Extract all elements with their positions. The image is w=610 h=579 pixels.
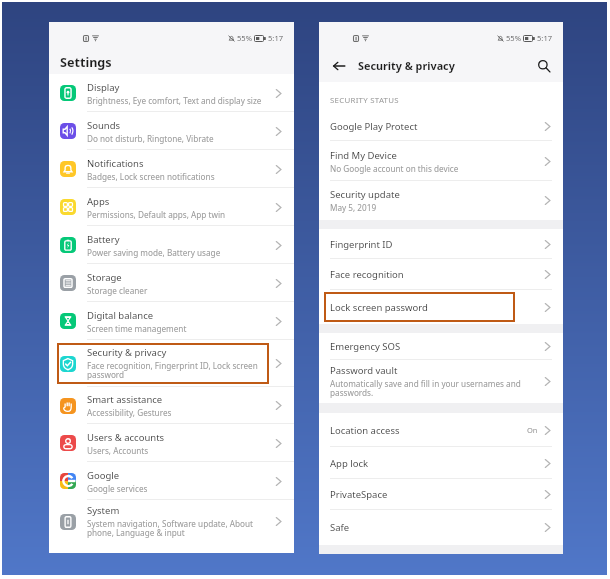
staticText: Apps [87,195,110,208]
button[interactable]: Display [49,74,294,112]
staticText: App lock [330,457,369,470]
staticText: Power saving mode, Battery usage [87,247,221,258]
button[interactable]: System [49,500,294,543]
button[interactable]: App lock [319,447,563,479]
button[interactable]: Safe [319,510,563,545]
staticText: PrivateSpace [330,488,388,501]
staticText: Security & privacy [358,58,455,73]
staticText: Display [87,81,120,94]
staticText: Storage cleaner [87,285,148,296]
staticText: Google services [87,483,148,494]
staticText: SECURITY STATUS [330,95,399,106]
staticText: System navigation, Software update, Abou… [87,518,253,539]
button[interactable]: Fingerprint ID [319,229,563,259]
staticText: Fingerprint ID [330,238,393,251]
staticText: Google Play Protect [330,120,418,133]
button[interactable]: Face recognition [319,259,563,290]
staticText: Safe [330,521,350,534]
staticText: Security update [330,188,400,201]
staticText: Face recognition, Fingerprint ID, Lock s… [87,360,258,381]
staticText: Brightness, Eye comfort, Text and displa… [87,95,262,106]
button[interactable]: Google [49,462,294,500]
button[interactable]: Lock screen password [319,290,563,324]
button[interactable]: Location access [319,413,563,447]
staticText: May 5, 2019 [330,202,377,213]
staticText: On [527,425,538,435]
staticText: Accessibility, Gestures [87,407,172,418]
staticText: Storage [87,271,122,284]
button[interactable]: Emergency SOS [319,333,563,360]
staticText: Sounds [87,119,121,132]
staticText: Emergency SOS [330,340,401,353]
staticText: Location access [330,424,400,437]
button[interactable]: Battery [49,226,294,264]
button[interactable]: Storage [49,264,294,302]
staticText: System [87,504,120,517]
staticText: Lock screen password [330,301,428,314]
staticText: Users & accounts [87,431,165,444]
staticText: 55% [506,33,521,43]
staticText: No Google account on this device [330,163,459,174]
staticText: 55% [237,33,252,43]
staticText: Battery [87,233,120,246]
button[interactable]: Find My Device [319,141,563,181]
button[interactable]: Password vault [319,360,563,403]
button[interactable]: Search [535,57,552,74]
button[interactable]: Google Play Protect [319,111,563,141]
staticText: 5:17 [537,33,553,43]
button[interactable]: Users & accounts [49,424,294,462]
staticText: Smart assistance [87,393,163,406]
staticText: Badges, Lock screen notifications [87,171,215,182]
staticText: Face recognition [330,268,404,281]
button[interactable]: Smart assistance [49,387,294,424]
staticText: Users, Accounts [87,445,149,456]
button[interactable]: Notifications [49,150,294,188]
staticText: Digital balance [87,309,154,322]
staticText: Settings [60,54,112,71]
staticText: Automatically save and fill in your user… [330,378,521,399]
button[interactable]: Digital balance [49,302,294,340]
staticText: Google [87,469,120,482]
staticText: Notifications [87,157,144,170]
staticText: Password vault [330,364,398,377]
button[interactable]: Security update [319,181,563,220]
button[interactable]: Apps [49,188,294,226]
staticText: 5:17 [268,33,284,43]
staticText: Find My Device [330,149,397,162]
button[interactable]: Sounds [49,112,294,150]
staticText: Security & privacy [87,346,167,359]
staticText: Do not disturb, Ringtone, Vibrate [87,133,214,144]
staticText: Permissions, Default apps, App twin [87,209,226,220]
button[interactable]: Back [330,57,347,74]
button[interactable]: PrivateSpace [319,479,563,510]
staticText: Screen time management [87,323,187,334]
button[interactable]: Security & privacy [49,340,294,387]
